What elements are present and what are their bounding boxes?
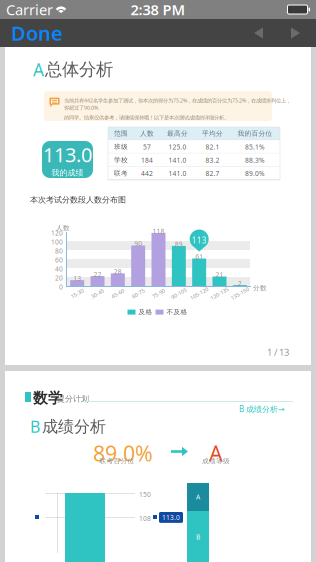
staticText: B 成绩分析→ <box>239 404 285 414</box>
staticText: 及格 <box>138 308 152 316</box>
staticText: 90-105 <box>170 290 187 297</box>
staticText: 125.0 <box>168 142 186 151</box>
staticText: 135-150 <box>230 290 250 297</box>
staticText: 442 <box>141 169 153 178</box>
staticText: 当前共有442名学生参加了测试，你本次的得分为75.2%，在成绩的百分位为75.… <box>64 97 291 111</box>
staticText: 40 <box>55 265 63 273</box>
staticText: 提分计划 <box>57 394 89 404</box>
staticText: 60-75 <box>131 290 145 297</box>
staticText: 人数 <box>140 129 154 138</box>
staticText: 105-120 <box>189 290 209 297</box>
staticText: 61 <box>195 252 203 261</box>
staticText: 13 <box>73 274 81 283</box>
staticText: 21 <box>215 270 223 279</box>
staticText: 57 <box>143 142 151 151</box>
staticText: 88.3% <box>245 156 265 165</box>
staticText: 80 <box>55 247 63 255</box>
staticText: 2:38 PM <box>130 0 185 19</box>
staticText: 113 <box>192 235 207 246</box>
staticText: 113.0 <box>162 513 180 522</box>
staticText: B <box>196 533 200 541</box>
button[interactable]: B 成绩分析→ <box>5 404 285 414</box>
staticText: 不及格 <box>166 308 187 316</box>
staticText: 本次考试分数段人数分布图 <box>30 195 126 205</box>
staticText: 184 <box>141 156 153 165</box>
staticText: 1 / 13 <box>267 346 289 358</box>
staticText: 108 <box>139 514 151 523</box>
staticText: 120 <box>51 229 63 237</box>
staticText: 113.0 <box>43 141 92 168</box>
staticText: 85.1% <box>245 142 265 151</box>
staticText: 120-135 <box>209 290 229 297</box>
staticText: 成绩等级 <box>202 457 230 465</box>
staticText: B <box>30 416 40 437</box>
staticText: 82.7 <box>205 169 219 178</box>
staticText: 141.0 <box>168 169 186 178</box>
staticText: 数学 <box>33 389 63 407</box>
staticText: 30-45 <box>90 290 104 297</box>
staticText: 89.0% <box>93 439 153 467</box>
staticText: 100 <box>51 238 63 246</box>
staticText: 82.1 <box>205 142 219 151</box>
staticText: 20 <box>55 274 63 282</box>
staticText: 45-60 <box>111 290 125 297</box>
staticText: 89 <box>175 240 183 249</box>
staticText: 90 <box>134 239 142 248</box>
staticText: Done <box>11 20 63 46</box>
button[interactable]: Next page <box>277 19 314 47</box>
staticText: 成绩分析 <box>42 417 106 436</box>
staticText: 分数 <box>253 284 267 292</box>
staticText: 最高分 <box>167 129 188 138</box>
button[interactable]: Done <box>2 19 72 47</box>
staticText: 0 <box>59 283 63 291</box>
button[interactable]: Previous page <box>240 19 277 47</box>
staticText: 总体分析 <box>45 59 113 80</box>
staticText: 22 <box>93 270 101 279</box>
staticText: 范围 <box>114 129 128 138</box>
staticText: 118 <box>152 227 164 236</box>
staticText: 75-90 <box>151 290 165 297</box>
staticText: 150 <box>139 490 151 499</box>
staticText: 2 <box>238 279 242 288</box>
staticText: Carrier <box>6 0 53 19</box>
staticText: 28 <box>114 267 122 276</box>
staticText: 我的百分位 <box>237 129 272 138</box>
staticText: 平均分 <box>202 129 223 138</box>
staticText: A <box>196 493 200 501</box>
staticText: 89.0% <box>245 169 265 178</box>
staticText: 学校 <box>114 156 128 164</box>
staticText: A <box>33 58 44 81</box>
staticText: 联考 <box>114 169 128 177</box>
staticText: 我的成绩 <box>51 168 83 178</box>
staticText: 83.2 <box>205 156 219 165</box>
staticText: 60 <box>55 256 63 264</box>
staticText: 班级 <box>114 143 128 151</box>
staticText: 15-30 <box>70 290 84 297</box>
staticText: 141.0 <box>168 156 186 165</box>
staticText: 的同学。结果仅供参考，请继续保持哦！以下是本次测试成绩的详细分析。 <box>64 114 229 121</box>
staticText: 联考百分位 <box>99 457 134 465</box>
staticText: 人数 <box>56 224 70 232</box>
staticText: A <box>209 439 223 467</box>
